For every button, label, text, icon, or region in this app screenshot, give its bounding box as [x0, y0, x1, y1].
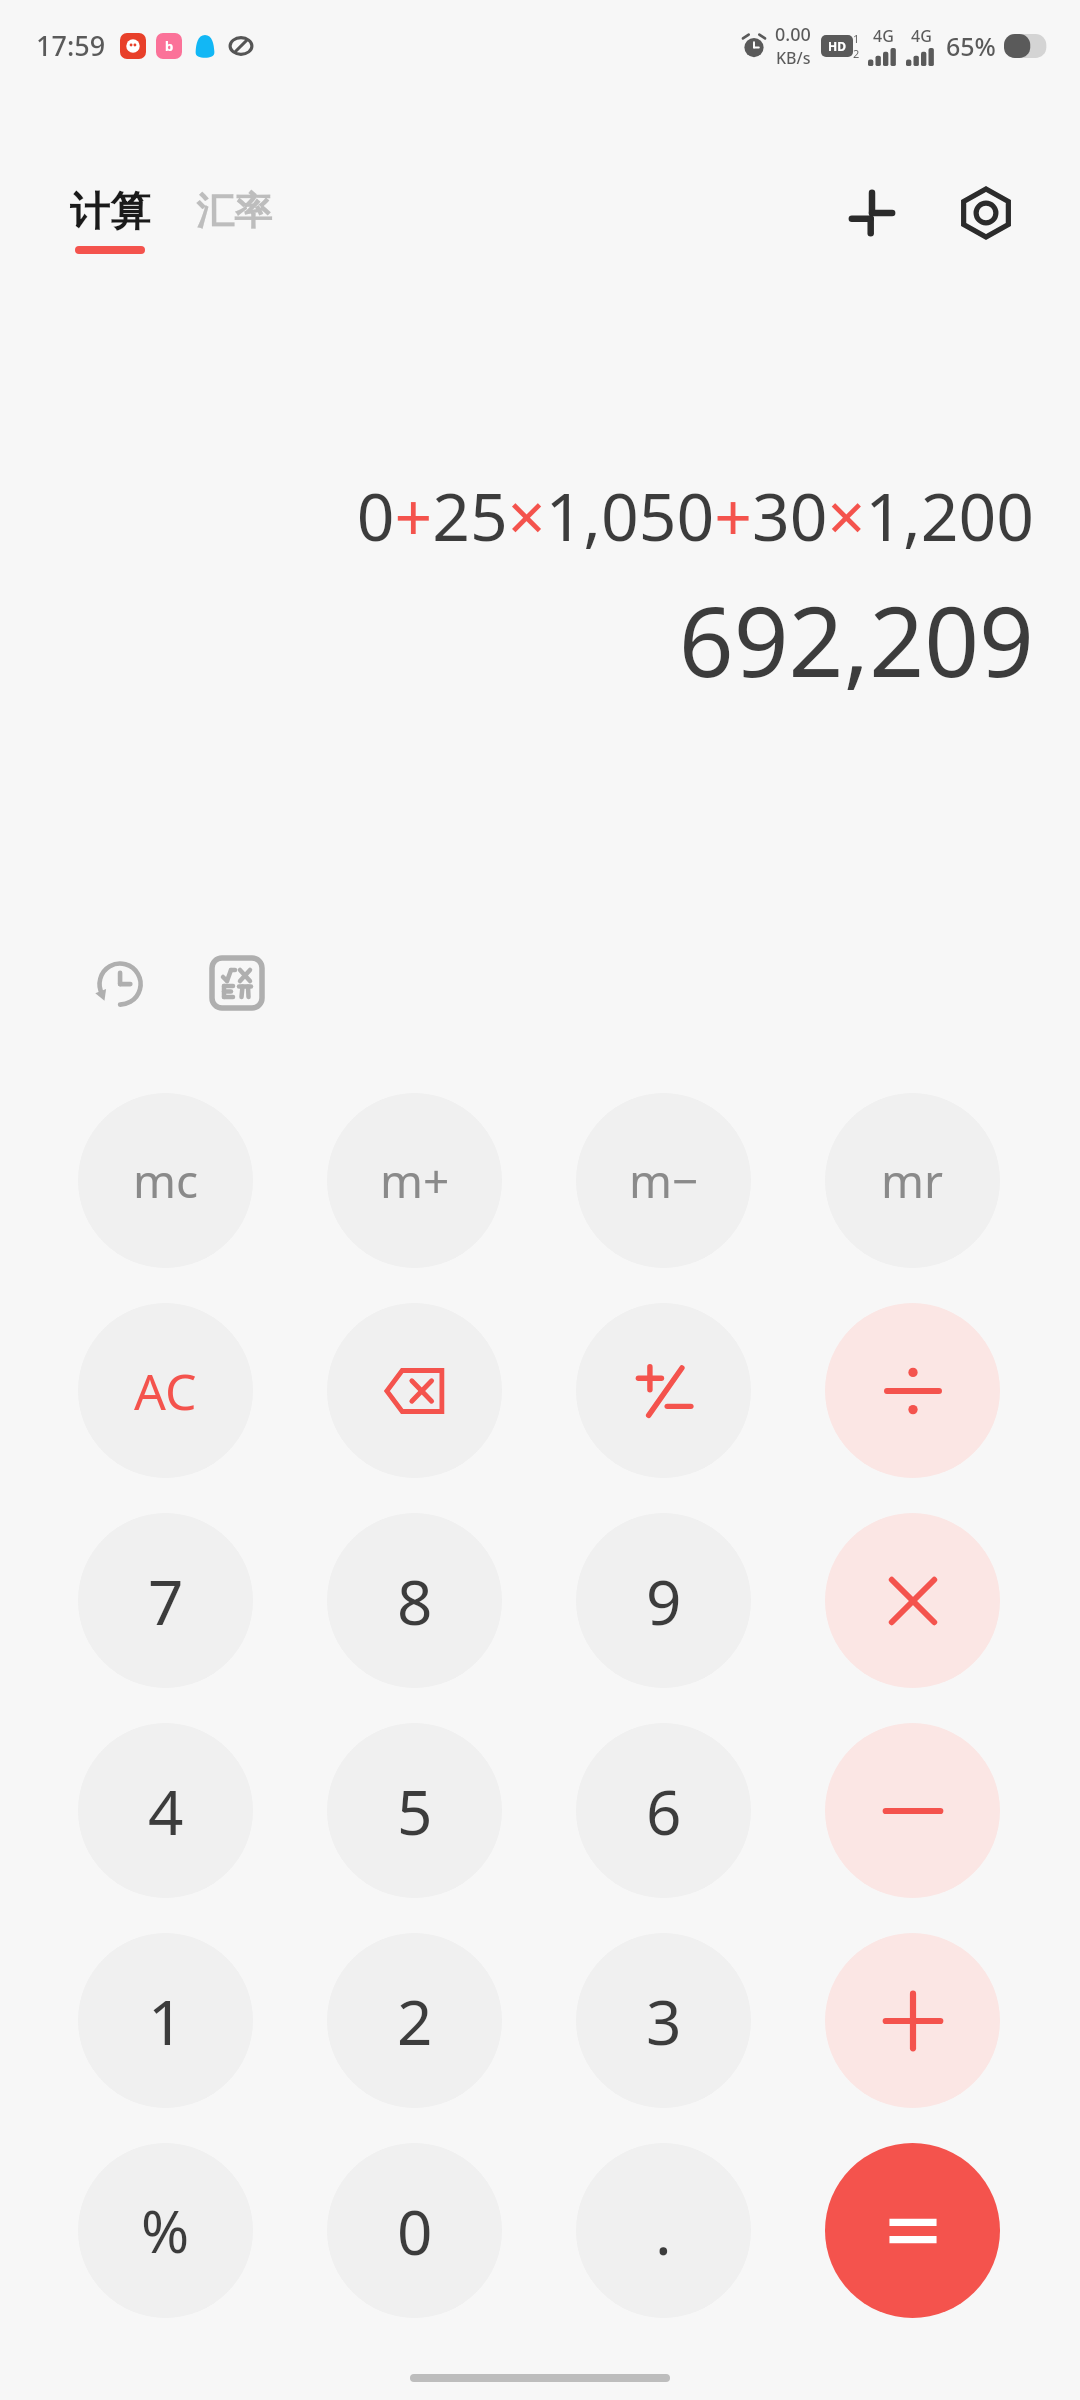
- staticText: 4: [148, 1769, 184, 1853]
- button[interactable]: History: [76, 940, 162, 1026]
- button[interactable]: 计算: [68, 186, 152, 254]
- button[interactable]: Multiply: [825, 1513, 1000, 1688]
- button[interactable]: m−: [576, 1093, 751, 1268]
- button[interactable]: Backspace: [327, 1303, 502, 1478]
- staticText: 692,209: [678, 574, 1034, 705]
- staticText: mr: [881, 1149, 944, 1212]
- staticText: HD: [828, 38, 846, 54]
- button[interactable]: 9: [576, 1513, 751, 1688]
- staticText: 汇率: [196, 187, 272, 235]
- staticText: AC: [134, 1357, 197, 1425]
- staticText: %: [141, 2191, 190, 2270]
- button[interactable]: 汇率: [194, 181, 274, 259]
- staticText: m−: [629, 1149, 699, 1212]
- staticText: .: [655, 2189, 672, 2273]
- staticText: 7: [148, 1559, 184, 1643]
- staticText: 6: [646, 1769, 682, 1853]
- staticText: 17:59: [36, 27, 106, 64]
- button[interactable]: Plus: [825, 1933, 1000, 2108]
- button[interactable]: Scientific mode: [194, 940, 280, 1026]
- staticText: 2: [397, 1979, 433, 2063]
- button[interactable]: 5: [327, 1723, 502, 1898]
- staticText: 计算: [70, 186, 150, 236]
- button[interactable]: 8: [327, 1513, 502, 1688]
- button[interactable]: Divide: [825, 1303, 1000, 1478]
- staticText: 5: [397, 1769, 433, 1853]
- staticText: 65%: [946, 29, 996, 63]
- button[interactable]: 7: [78, 1513, 253, 1688]
- button[interactable]: Plus minus sign: [576, 1303, 751, 1478]
- button[interactable]: mc: [78, 1093, 253, 1268]
- button[interactable]: New calculation: [830, 171, 914, 255]
- staticText: 0+25×1,050+30×1,200: [356, 470, 1034, 560]
- staticText: m+: [380, 1149, 450, 1212]
- staticText: 9: [646, 1559, 682, 1643]
- staticText: 4G: [911, 25, 932, 47]
- button[interactable]: All clear: [78, 1303, 253, 1478]
- staticText: 0: [397, 2189, 433, 2273]
- button[interactable]: 6: [576, 1723, 751, 1898]
- staticText: b: [165, 37, 174, 55]
- button[interactable]: mr: [825, 1093, 1000, 1268]
- button[interactable]: 2: [327, 1933, 502, 2108]
- button[interactable]: Settings: [944, 171, 1028, 255]
- staticText: 1: [853, 31, 860, 46]
- button[interactable]: 3: [576, 1933, 751, 2108]
- staticText: 2: [853, 46, 860, 61]
- button[interactable]: %: [78, 2143, 253, 2318]
- staticText: 1: [148, 1979, 184, 2063]
- button[interactable]: m+: [327, 1093, 502, 1268]
- button[interactable]: Minus: [825, 1723, 1000, 1898]
- staticText: 4G: [873, 25, 894, 47]
- button[interactable]: 0: [327, 2143, 502, 2318]
- button[interactable]: Equals: [825, 2143, 1000, 2318]
- staticText: mc: [133, 1149, 199, 1212]
- button[interactable]: 4: [78, 1723, 253, 1898]
- staticText: 3: [646, 1979, 682, 2063]
- button[interactable]: 1: [78, 1933, 253, 2108]
- staticText: 0.00: [775, 22, 811, 47]
- staticText: KB/s: [776, 47, 811, 69]
- button[interactable]: .: [576, 2143, 751, 2318]
- staticText: 8: [397, 1559, 433, 1643]
